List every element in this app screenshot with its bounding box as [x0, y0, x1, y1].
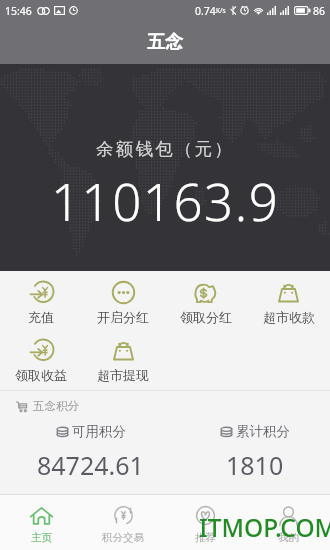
staticText: 86 [313, 4, 326, 18]
staticText: 充值 [28, 309, 54, 325]
other: 推荐 [194, 506, 217, 525]
staticText: 推荐 [195, 531, 216, 544]
staticText: 可用积分 [72, 423, 126, 440]
staticText: 84724.61 [37, 448, 144, 482]
staticText: 110163.9 [51, 166, 280, 235]
button[interactable]: 充值 [0, 280, 82, 325]
button[interactable]: 领取收益 [0, 338, 82, 383]
staticText: 0.74 [195, 4, 216, 18]
staticText: 超市收款 [263, 309, 315, 325]
button[interactable]: 积分交易 [82, 497, 164, 550]
staticText: 五念 [147, 31, 183, 54]
staticText: 五念积分 [33, 399, 79, 413]
button[interactable]: 超市提现 [82, 338, 164, 383]
staticText: 领取收益 [15, 367, 67, 383]
staticText: 积分交易 [102, 531, 144, 544]
other: 主页 [30, 506, 53, 525]
staticText: 15:46 [5, 4, 32, 18]
other: 积分交易 [112, 506, 135, 525]
button[interactable]: 领取分红 [164, 280, 247, 325]
staticText: 主页 [31, 531, 52, 544]
button[interactable]: 主页 [0, 497, 82, 550]
staticText: ITMOP.COM [199, 511, 330, 544]
staticText: 我的 [278, 531, 299, 544]
staticText: 开启分红 [97, 309, 149, 325]
button[interactable]: 开启分红 [82, 280, 164, 325]
staticText: K/s [216, 6, 226, 15]
other: 我的 [277, 506, 300, 525]
staticText: 余额钱包（元） [96, 138, 234, 160]
button[interactable]: 推荐 [164, 497, 247, 550]
button[interactable]: 超市收款 [247, 280, 330, 325]
staticText: 超市提现 [97, 367, 149, 383]
staticText: 领取分红 [180, 309, 232, 325]
staticText: 累计积分 [236, 423, 290, 440]
button[interactable]: 我的 [247, 497, 330, 550]
staticText: 1810 [226, 448, 284, 482]
